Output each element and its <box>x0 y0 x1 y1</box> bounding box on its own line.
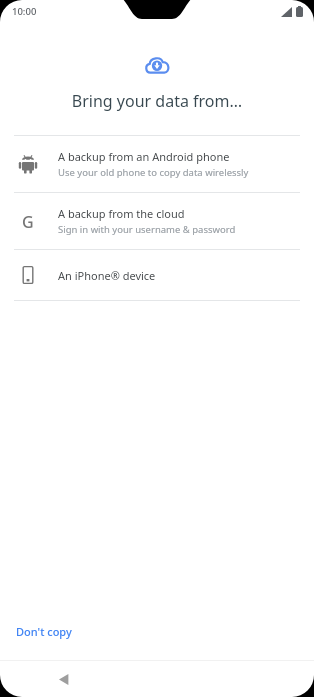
button[interactable]: iPhone device <box>0 250 314 300</box>
staticText: A backup from the cloud <box>58 206 185 221</box>
button[interactable]: Android phone <box>0 136 314 192</box>
staticText: Bring your data from… <box>0 90 314 112</box>
staticText: Use your old phone to copy data wireless… <box>58 166 249 179</box>
staticText: Don't copy <box>16 624 72 639</box>
staticText: G <box>22 211 34 231</box>
staticText: A backup from an Android phone <box>58 149 230 164</box>
other: Android phone <box>18 154 38 174</box>
staticText: Sign in with your username & password <box>58 223 236 236</box>
other: Google account <box>18 211 38 231</box>
staticText: An iPhone® device <box>58 268 156 283</box>
button[interactable]: Back <box>52 667 76 691</box>
button[interactable]: Google account <box>0 193 314 249</box>
other: iPhone device <box>18 265 38 285</box>
button[interactable]: Don't copy <box>0 614 88 649</box>
staticText: 10:00 <box>12 5 37 18</box>
